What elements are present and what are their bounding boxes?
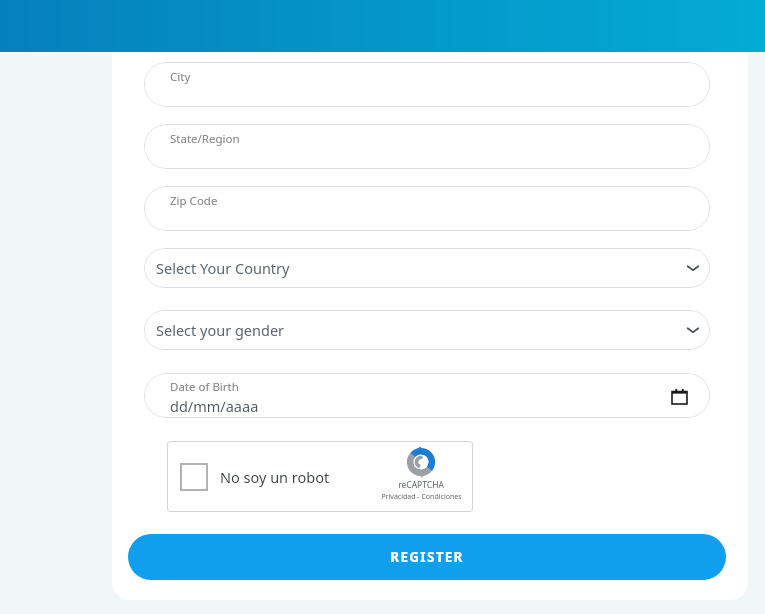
staticText: Select Your Country <box>156 258 290 278</box>
button[interactable]: REGISTER <box>128 534 726 580</box>
staticText: Zip Code <box>170 193 218 209</box>
button[interactable]: Select Your Country <box>144 248 710 288</box>
staticText: City <box>170 69 191 85</box>
button[interactable]: City <box>144 62 710 107</box>
button[interactable]: Zip Code <box>144 186 710 231</box>
staticText: Select your gender <box>156 320 285 340</box>
staticText: No soy un robot <box>220 467 330 487</box>
button[interactable]: Open calendar picker <box>670 387 688 405</box>
staticText: REGISTER <box>390 548 464 566</box>
staticText: Date of Birth <box>170 379 239 395</box>
staticText: State/Region <box>170 131 240 147</box>
button[interactable]: Date of Birth <box>144 373 710 418</box>
button[interactable]: I'm not a robot checkbox <box>180 463 208 491</box>
button[interactable]: Select your gender <box>144 310 710 350</box>
staticText: Privacidad - Condiciones <box>381 492 462 502</box>
staticText: dd/mm/aaaa <box>170 396 259 416</box>
staticText: reCAPTCHA <box>398 479 444 491</box>
button[interactable]: State/Region <box>144 124 710 169</box>
